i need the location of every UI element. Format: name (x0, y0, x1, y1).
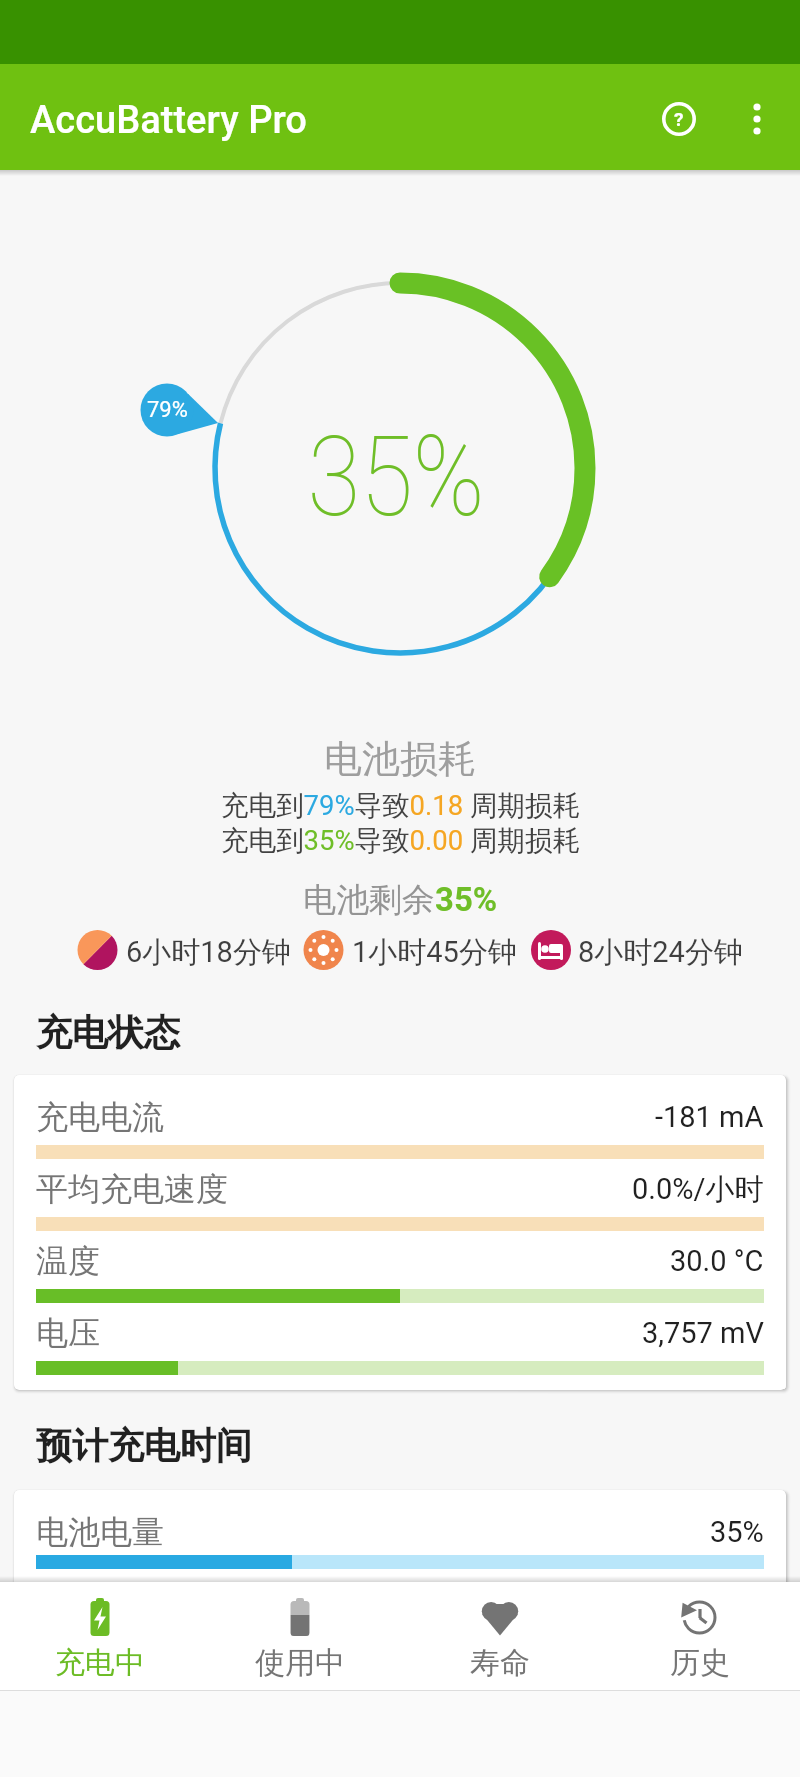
staticText: 3,757 mV (642, 1316, 764, 1350)
staticText: 历史 (670, 1644, 730, 1682)
staticText: 35% (710, 1515, 764, 1549)
staticText: 使用中 (255, 1644, 345, 1682)
staticText: AccuBattery Pro (30, 98, 307, 143)
staticText: 充电电流 (36, 1097, 164, 1137)
button[interactable]: 使用中 (200, 1582, 400, 1690)
staticText: 充电状态 (36, 1010, 180, 1055)
button[interactable] (733, 95, 781, 143)
staticText: 30.0 °C (670, 1244, 764, 1278)
staticText: 寿命 (470, 1644, 530, 1682)
staticText: ? (674, 108, 684, 130)
staticText: 79% (147, 397, 188, 423)
staticText: 充电中 (55, 1644, 145, 1682)
staticText: 充电到35%导致0.00 周期损耗 (221, 824, 580, 859)
button[interactable]: 充电中 (0, 1582, 200, 1690)
staticText: -181 mA (655, 1100, 764, 1134)
staticText: 电池损耗 (324, 735, 476, 783)
staticText: 35% (307, 411, 485, 542)
staticText: 电池电量 (36, 1512, 164, 1552)
staticText: 平均充电速度 (36, 1169, 228, 1209)
staticText: 预计充电时间 (36, 1423, 252, 1468)
staticText: 0.0%/小时 (632, 1171, 764, 1208)
staticText: 电池剩余35% (303, 879, 498, 921)
staticText: 电压 (36, 1313, 100, 1353)
button[interactable]: 历史 (600, 1582, 800, 1690)
button[interactable]: ? (655, 95, 703, 143)
staticText: 6小时18分钟 (126, 934, 291, 971)
staticText: 1小时45分钟 (352, 934, 517, 971)
staticText: 温度 (36, 1241, 100, 1281)
staticText: 充电到79%导致0.18 周期损耗 (221, 789, 580, 824)
staticText: 8小时24分钟 (578, 934, 743, 971)
button[interactable]: 寿命 (400, 1582, 600, 1690)
